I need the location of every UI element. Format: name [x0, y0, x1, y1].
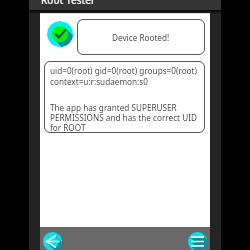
button[interactable]: Back [43, 232, 62, 250]
staticText: Device Rooted! [112, 32, 170, 43]
staticText: The app has granted SUPERUSER PERMISSION… [50, 102, 200, 133]
button[interactable]: Root Tester [29, 0, 221, 12]
staticText: Root Tester [41, 0, 96, 5]
button[interactable]: Device Rooted! [77, 19, 205, 55]
staticText: context=u:r:sudaemon:s0 [50, 76, 148, 87]
staticText: uid=0(root) gid=0(root) groups=0(root) [50, 65, 197, 76]
button[interactable]: Menu [188, 232, 207, 250]
